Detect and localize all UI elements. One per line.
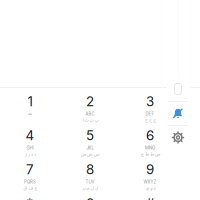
staticText: *: [26, 195, 33, 200]
staticText: س ش ص: [80, 151, 99, 157]
staticText: PQRS: [24, 179, 36, 185]
staticText: 5: [86, 127, 94, 143]
staticText: 7: [26, 161, 34, 177]
staticText: 2: [86, 93, 94, 109]
staticText: 3: [146, 93, 154, 109]
button[interactable]: 3: [120, 88, 180, 122]
staticText: TUV: [85, 179, 94, 185]
button[interactable]: #: [120, 190, 180, 200]
button[interactable]: 0: [60, 190, 120, 200]
button[interactable]: Silence calls: [166, 102, 190, 125]
staticText: 1: [27, 93, 32, 109]
staticText: 8: [86, 161, 94, 177]
button[interactable]: 6: [120, 122, 180, 156]
staticText: DEF: [145, 111, 154, 117]
button[interactable]: 7: [0, 156, 60, 190]
staticText: 9: [146, 161, 154, 177]
staticText: ه و ي: [145, 185, 155, 191]
button[interactable]: 1: [0, 88, 60, 122]
staticText: د ذ ر ز: [24, 151, 35, 157]
staticText: ك ل م ن: [82, 185, 98, 191]
staticText: JKL: [86, 145, 93, 151]
button[interactable]: 4: [0, 122, 60, 156]
staticText: WXYZ: [143, 179, 156, 185]
button[interactable]: 2: [60, 88, 120, 122]
button[interactable]: *: [0, 190, 60, 200]
staticText: #: [146, 195, 154, 200]
staticText: ∞: [28, 111, 32, 117]
staticText: ABC: [85, 111, 94, 117]
button[interactable]: Keypad tone: [166, 77, 190, 101]
button[interactable]: Settings: [166, 126, 190, 149]
staticText: 4: [25, 127, 34, 143]
button[interactable]: 8: [60, 156, 120, 190]
staticText: MNO: [145, 145, 155, 151]
staticText: 0: [86, 195, 94, 200]
staticText: ض ط ظ ع: [140, 151, 159, 157]
button[interactable]: 5: [60, 122, 120, 156]
button[interactable]: 9: [120, 156, 180, 190]
staticText: 6: [146, 127, 154, 143]
staticText: ب ت ث ا: [82, 117, 98, 123]
staticText: ج ح خ: [144, 117, 155, 123]
staticText: غ ف ق: [23, 185, 37, 191]
staticText: GHI: [26, 145, 33, 151]
